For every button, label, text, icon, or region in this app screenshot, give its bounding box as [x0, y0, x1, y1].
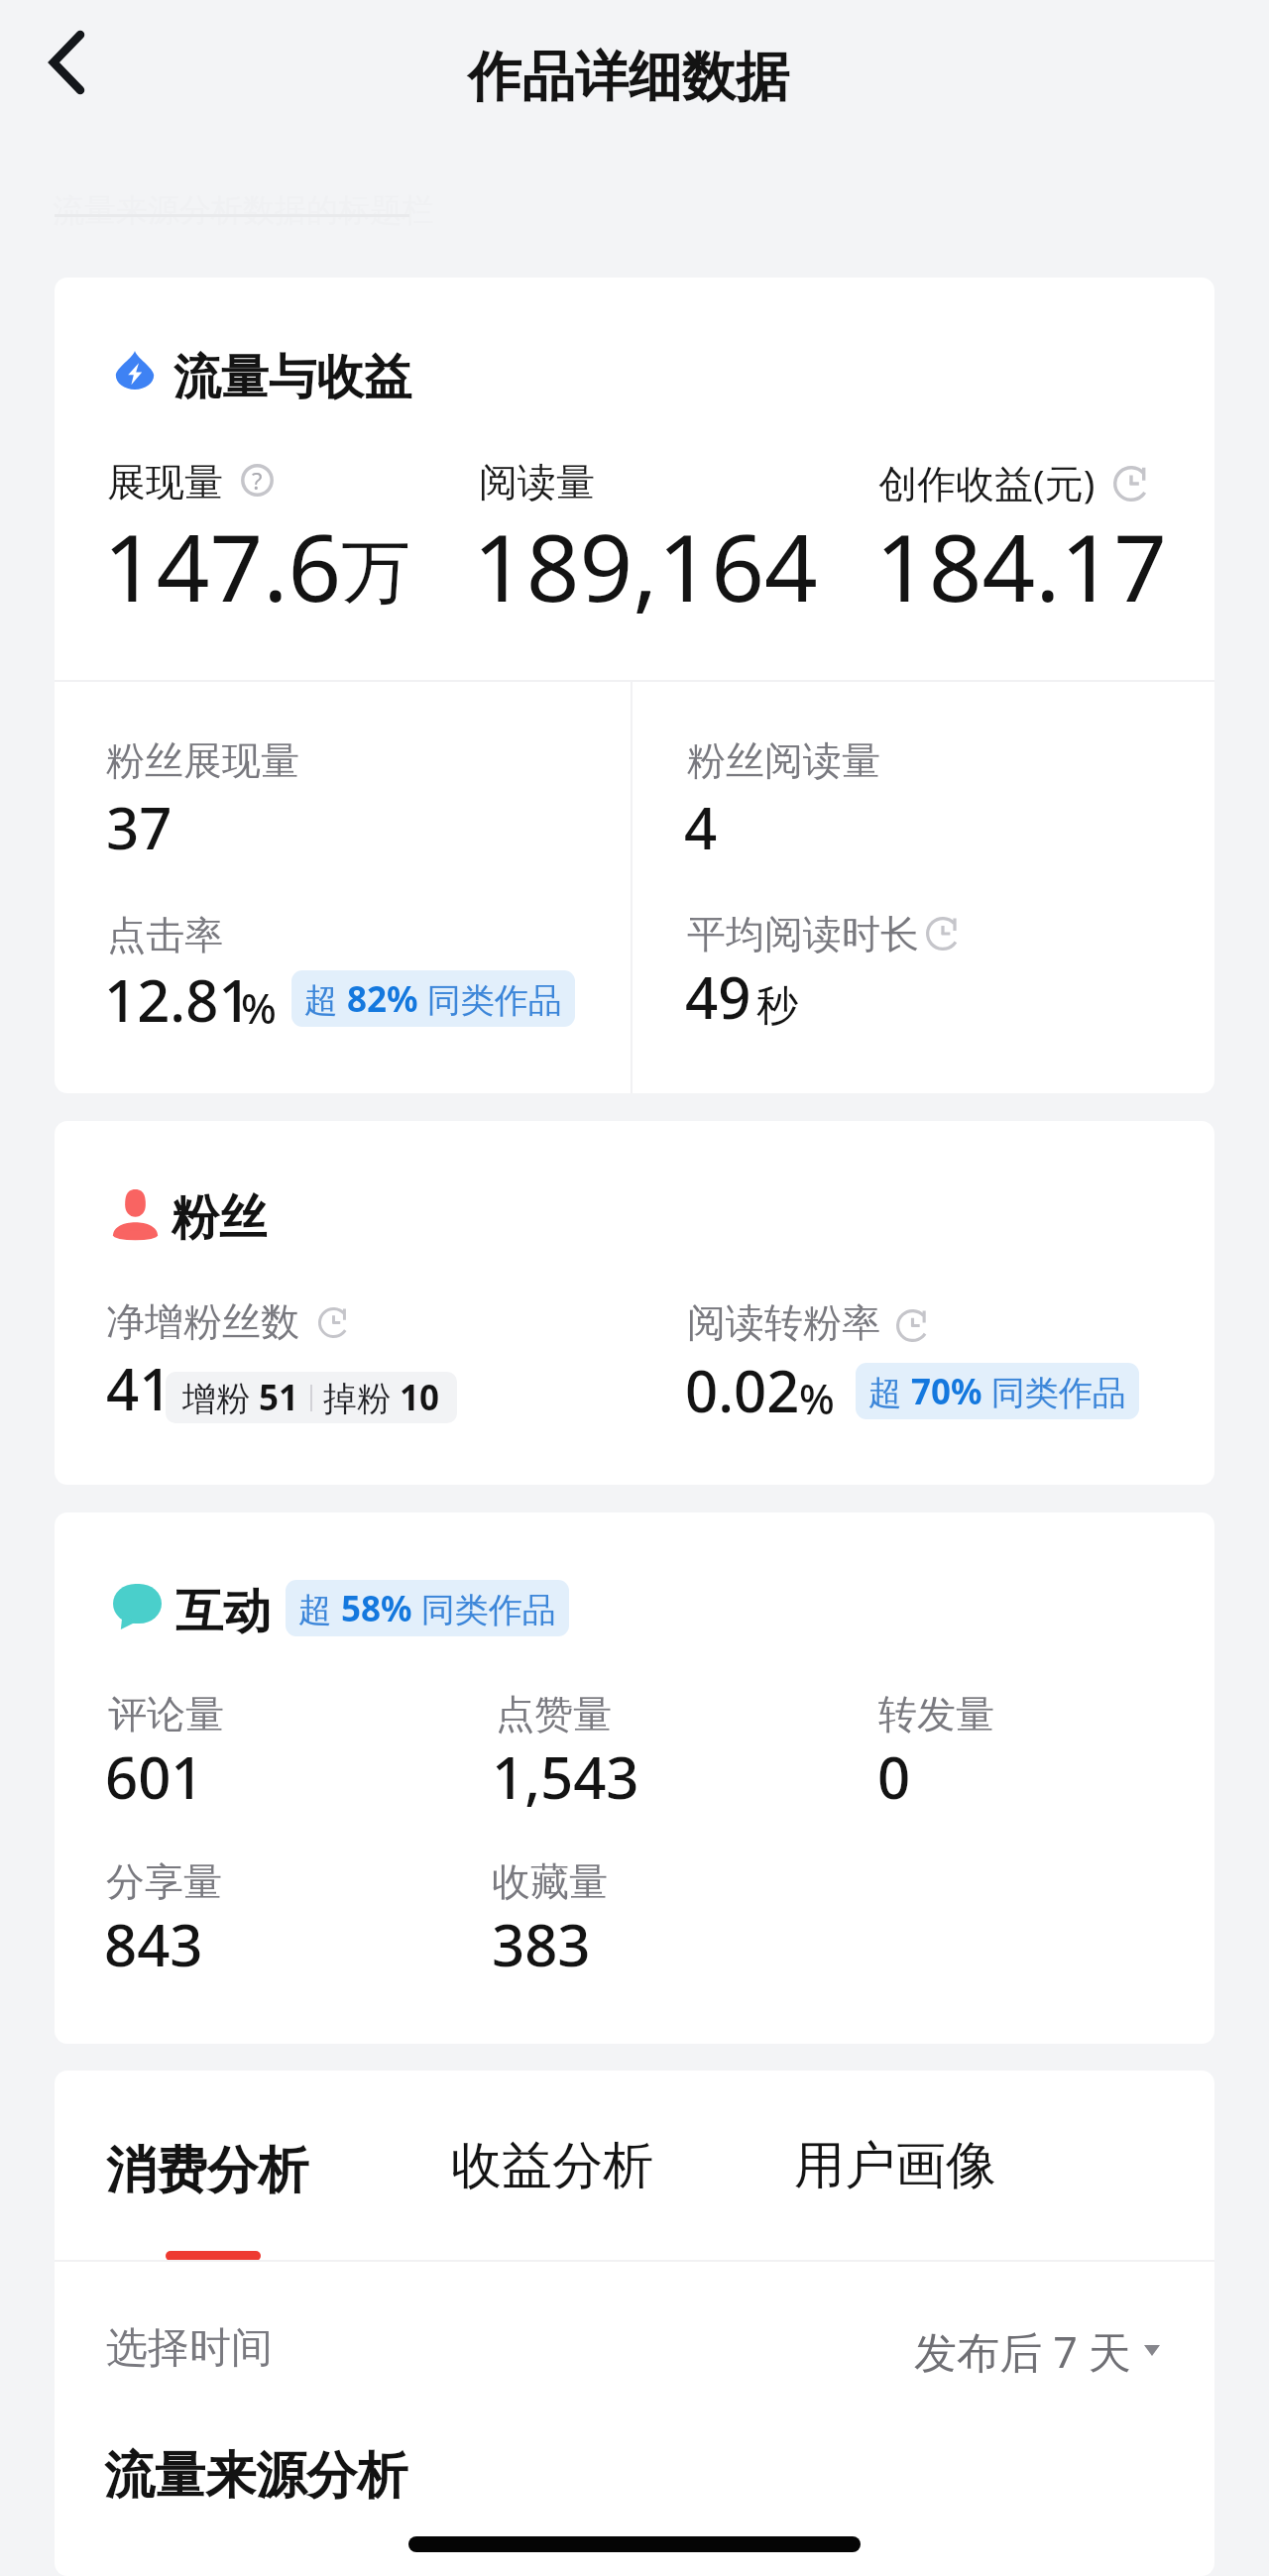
staticText: 12.81 [104, 960, 252, 1039]
staticText: 4 [684, 788, 718, 866]
staticText: 展现量 [107, 458, 223, 506]
button[interactable]: 用户画像 [743, 2102, 1040, 2211]
staticText: 用户画像 [794, 2134, 996, 2197]
staticText: ? [252, 464, 263, 497]
staticText: 互动 [175, 1582, 271, 1641]
staticText: 评论量 [108, 1690, 224, 1738]
staticText: 粉丝阅读量 [687, 736, 880, 785]
staticText: 70% [911, 1368, 982, 1415]
staticText: 粉丝 [172, 1188, 267, 1248]
staticText: % [241, 979, 277, 1036]
staticText: 流量来源分析 [104, 2444, 407, 2508]
staticText: 184.17 [875, 503, 1168, 629]
staticText: 粉丝展现量 [106, 736, 299, 785]
staticText: 净增粉丝数 [106, 1297, 299, 1346]
staticText: 秒 [756, 980, 798, 1033]
staticText: 作品详细数据 [468, 44, 789, 111]
staticText: 843 [104, 1905, 203, 1983]
button[interactable]: 发布后 7 天 [907, 2303, 1165, 2383]
staticText: 82% [347, 975, 418, 1023]
button[interactable]: 消费分析 [55, 2102, 352, 2211]
staticText: % [799, 1370, 835, 1426]
staticText: 阅读转粉率 [687, 1298, 880, 1347]
staticText: 同类作品 [982, 1369, 1126, 1414]
button[interactable]: 关于展现量 [241, 464, 274, 497]
staticText: 万 [341, 529, 410, 616]
staticText: 发布后 7 天 [914, 2322, 1131, 2381]
staticText: 超 [298, 1586, 341, 1631]
staticText: 创作收益(元) [878, 456, 1096, 508]
staticText: 收藏量 [492, 1857, 608, 1906]
staticText: 0 [877, 1737, 911, 1816]
staticText: 0.02 [685, 1351, 800, 1429]
staticText: 流量与收益 [173, 348, 411, 407]
staticText: 超 [304, 976, 347, 1022]
staticText: 37 [106, 788, 173, 866]
staticText: 点赞量 [496, 1690, 612, 1738]
staticText: 同类作品 [412, 1586, 556, 1631]
staticText: 601 [105, 1737, 204, 1816]
staticText: 41 [106, 1349, 173, 1427]
staticText: 同类作品 [418, 976, 562, 1022]
button[interactable]: 创作收益说明 [1113, 466, 1149, 502]
staticText: 收益分析 [451, 2134, 653, 2197]
staticText: 10 [400, 1374, 440, 1421]
staticText: 51 [259, 1374, 299, 1421]
staticText: 1,543 [492, 1737, 639, 1816]
staticText: 消费分析 [106, 2139, 308, 2202]
staticText: 383 [492, 1905, 591, 1983]
staticText: 189,164 [473, 503, 818, 629]
staticText: 147.6 [103, 503, 342, 629]
staticText: 49 [685, 957, 751, 1036]
staticText: 超 [868, 1369, 911, 1414]
staticText: 平均阅读时长 [687, 910, 919, 958]
staticText: 掉粉 [323, 1375, 400, 1420]
staticText: 转发量 [878, 1690, 994, 1738]
staticText: 点击率 [107, 911, 223, 959]
staticText: 58% [341, 1585, 412, 1632]
button[interactable]: Back [18, 18, 111, 111]
button[interactable]: 收益分析 [400, 2102, 697, 2211]
staticText: 选择时间 [106, 2322, 273, 2375]
staticText: 增粉 [182, 1375, 259, 1420]
staticText: 阅读量 [479, 458, 595, 506]
staticText: 分享量 [106, 1857, 222, 1906]
